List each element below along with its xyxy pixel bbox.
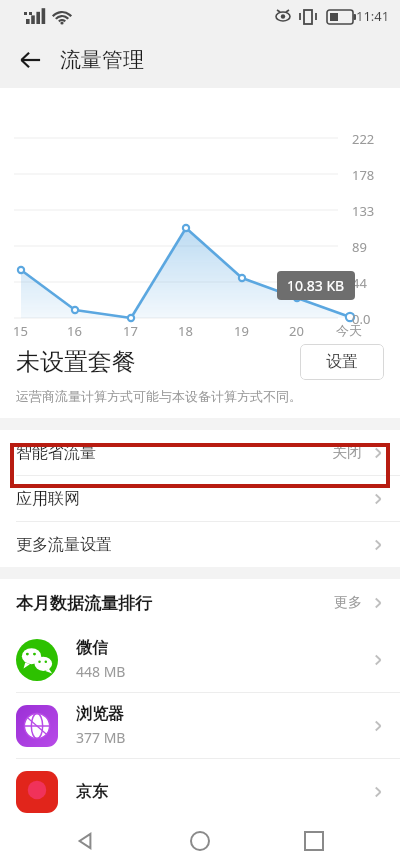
staticText: 19 — [234, 322, 249, 340]
staticText: 44 — [352, 274, 367, 292]
staticText: 关闭 — [332, 443, 362, 462]
button[interactable]: 返回 — [58, 815, 114, 867]
staticText: 448 MB — [76, 662, 126, 681]
button[interactable]: 微信 — [0, 627, 400, 692]
button[interactable]: 浏览器 — [0, 693, 400, 758]
staticText: 0.0 — [352, 310, 371, 328]
staticText: 20 — [289, 322, 304, 340]
button[interactable]: 京东 — [0, 759, 400, 824]
staticText: 本月数据流量排行 — [16, 593, 152, 614]
button[interactable]: 设置 — [300, 344, 384, 380]
button[interactable]: 返回 — [8, 38, 52, 82]
staticText: 18 — [178, 322, 193, 340]
button[interactable]: 更多流量设置 — [0, 522, 400, 567]
staticText: 设置 — [326, 352, 358, 372]
button[interactable]: 智能省流量 — [0, 430, 400, 475]
staticText: 16 — [67, 322, 82, 340]
staticText: 15 — [13, 322, 28, 340]
button[interactable]: 主屏幕 — [172, 815, 228, 867]
staticText: 京东 — [76, 782, 108, 802]
staticText: 222 — [352, 130, 375, 148]
staticText: 微信 — [76, 638, 108, 658]
staticText: 流量管理 — [60, 47, 144, 73]
staticText: 89 — [352, 238, 367, 256]
staticText: 未设置套餐 — [16, 347, 136, 377]
staticText: 应用联网 — [16, 489, 80, 509]
staticText: 11:41 — [356, 7, 390, 25]
staticText: 133 — [352, 202, 375, 220]
staticText: 17 — [123, 322, 138, 340]
staticText: 运营商流量计算方式可能与本设备计算方式不同。 — [16, 388, 302, 404]
staticText: 更多 — [334, 594, 362, 612]
button[interactable]: 应用联网 — [0, 476, 400, 521]
button[interactable]: 本月数据流量排行 — [0, 579, 400, 627]
staticText: 377 MB — [76, 728, 126, 747]
staticText: 智能省流量 — [16, 443, 96, 463]
staticText: 浏览器 — [76, 704, 124, 724]
staticText: 10.83 KB — [287, 276, 345, 295]
staticText: 178 — [352, 166, 375, 184]
button[interactable]: 最近任务 — [286, 815, 342, 867]
staticText: 今天 — [336, 322, 362, 338]
staticText: 更多流量设置 — [16, 535, 112, 555]
